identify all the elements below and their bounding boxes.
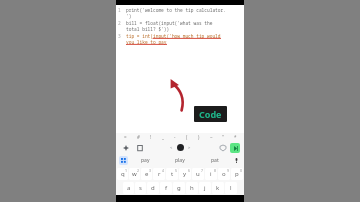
staticText: 3: [149, 168, 152, 173]
button[interactable]: =: [119, 133, 132, 141]
staticText: q: [121, 170, 125, 178]
staticText: pay: [141, 157, 150, 164]
staticText: u: [196, 170, 200, 178]
staticText: j: [204, 184, 206, 192]
button[interactable]: g: [173, 182, 185, 194]
button[interactable]: 2: [129, 168, 140, 180]
staticText: ): [198, 134, 200, 140]
button[interactable]: pay: [128, 154, 162, 167]
staticText: 3: [118, 33, 126, 39]
staticText: s: [139, 184, 142, 192]
staticText: w: [132, 170, 137, 178]
staticText: play: [175, 157, 185, 164]
button[interactable]: 8: [205, 168, 217, 180]
staticText: #: [137, 134, 140, 140]
button[interactable]: Code: [194, 106, 227, 122]
button[interactable]: 5: [166, 168, 178, 180]
staticText: a: [127, 184, 131, 192]
button[interactable]: f: [160, 182, 172, 194]
staticText: bill = float(input('what was the: [126, 20, 213, 26]
button[interactable]: !: [145, 133, 157, 141]
button[interactable]: *: [229, 133, 241, 141]
staticText: tip = int(input('how much tip would: [126, 33, 221, 39]
staticText: 1: [118, 7, 126, 13]
staticText: 2: [118, 20, 126, 26]
staticText: '): [126, 13, 132, 19]
staticText: h: [190, 184, 194, 192]
button[interactable]: k: [212, 182, 224, 194]
button[interactable]: ): [193, 133, 205, 141]
staticText: e: [145, 170, 149, 178]
staticText: 1: [125, 168, 128, 173]
staticText: 7: [201, 168, 204, 173]
button[interactable]: Settings: [217, 142, 228, 153]
button[interactable]: pat: [197, 154, 232, 167]
staticText: total bill? $')): [126, 26, 170, 32]
button[interactable]: play: [162, 154, 197, 167]
button[interactable]: 6: [179, 168, 191, 180]
staticText: 2: [137, 168, 140, 173]
button[interactable]: d: [147, 182, 159, 194]
staticText: Code: [199, 108, 222, 120]
staticText: -: [174, 134, 176, 140]
button[interactable]: ": [217, 133, 229, 141]
staticText: p: [235, 170, 239, 178]
staticText: print('welcome to the tip calculator.: [126, 7, 226, 13]
staticText: i: [210, 170, 212, 178]
staticText: o: [222, 170, 226, 178]
button[interactable]: 0: [231, 168, 243, 180]
button[interactable]: 1: [117, 168, 128, 180]
button[interactable]: 9: [218, 168, 230, 180]
staticText: *: [234, 134, 237, 140]
button[interactable]: h: [186, 182, 198, 194]
staticText: pat: [211, 157, 219, 164]
staticText: 5: [175, 168, 178, 173]
button[interactable]: _: [157, 133, 169, 141]
staticText: 9: [227, 168, 230, 173]
staticText: 4: [162, 168, 165, 173]
button[interactable]: j: [199, 182, 211, 194]
button[interactable]: #: [132, 133, 145, 141]
button[interactable]: 4: [153, 168, 165, 180]
button[interactable]: 3: [141, 168, 152, 180]
staticText: <: [170, 145, 173, 150]
button[interactable]: l: [225, 182, 237, 194]
staticText: d: [151, 184, 155, 192]
staticText: f: [165, 184, 168, 192]
button[interactable]: Clipboard: [134, 142, 145, 153]
button[interactable]: -: [169, 133, 181, 141]
staticText: ~: [210, 134, 213, 140]
staticText: !: [150, 134, 152, 140]
staticText: you like to pay: [126, 39, 167, 45]
staticText: ": [222, 134, 224, 140]
button[interactable]: ~: [205, 133, 217, 141]
staticText: g: [177, 184, 181, 192]
button[interactable]: Voice input: [177, 144, 184, 151]
staticText: =: [124, 134, 127, 140]
button[interactable]: a: [123, 182, 134, 194]
staticText: (: [186, 134, 188, 140]
staticText: 6: [188, 168, 191, 173]
staticText: k: [216, 184, 220, 192]
button[interactable]: Microphone: [232, 156, 241, 165]
button[interactable]: Run: [230, 143, 240, 153]
button[interactable]: Assistant: [120, 142, 131, 153]
button[interactable]: 7: [192, 168, 204, 180]
staticText: l: [230, 184, 232, 192]
staticText: 8: [214, 168, 217, 173]
button[interactable]: (: [181, 133, 193, 141]
staticText: y: [183, 170, 187, 178]
staticText: r: [158, 170, 161, 178]
button[interactable]: s: [135, 182, 146, 194]
staticText: 0: [240, 168, 243, 173]
button[interactable]: Emoji keyboard: [119, 156, 128, 165]
staticText: >: [188, 145, 191, 150]
staticText: _: [162, 134, 164, 140]
staticText: t: [171, 170, 174, 178]
